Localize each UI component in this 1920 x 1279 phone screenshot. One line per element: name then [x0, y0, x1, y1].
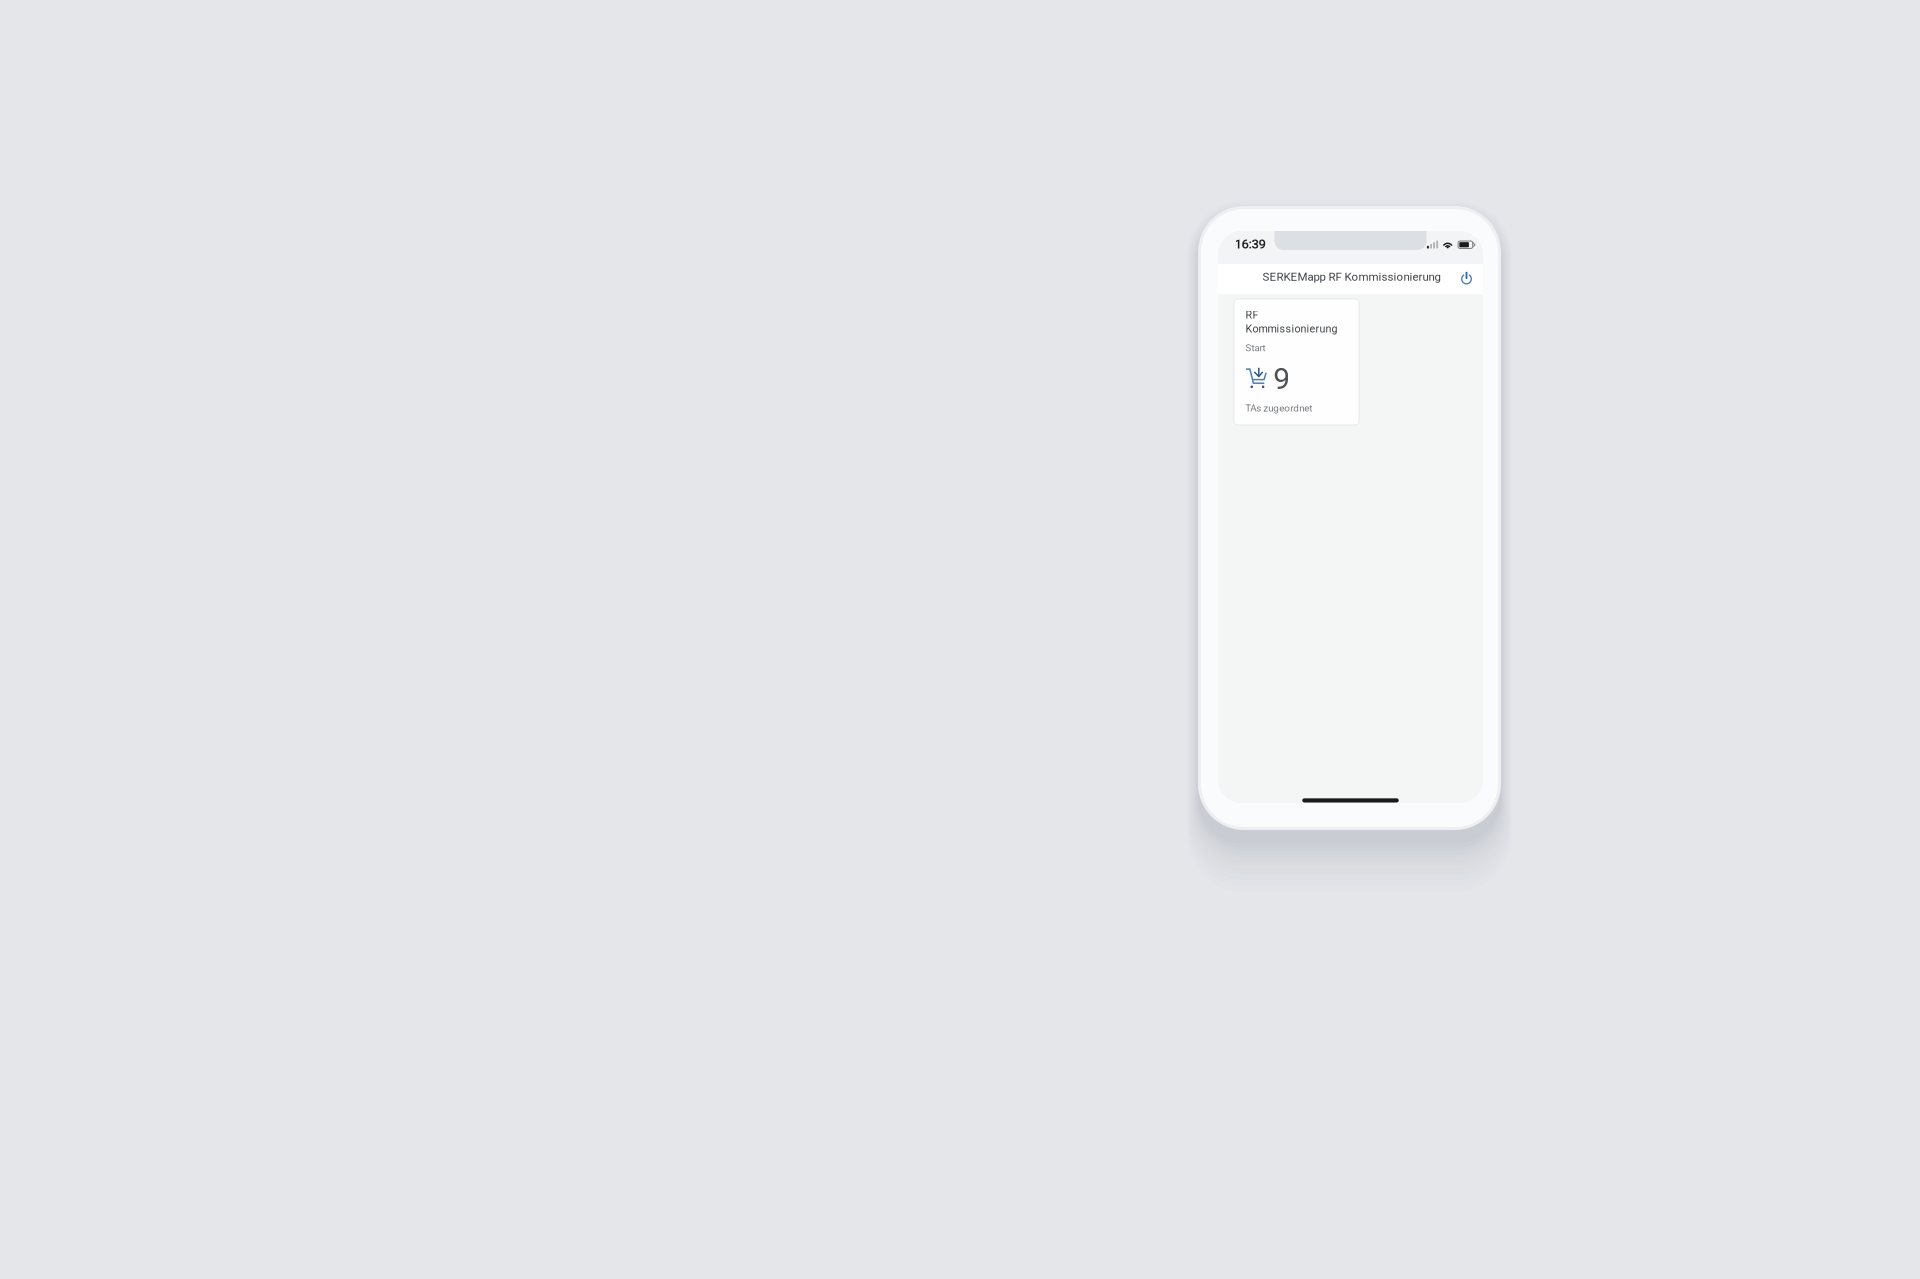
staticText: Kommissionierung [1245, 323, 1337, 335]
staticText: 16:39 [1234, 236, 1265, 252]
staticText: RF [1245, 309, 1258, 321]
staticText: TAs zugeordnet [1245, 402, 1312, 414]
staticText: 9 [1273, 361, 1290, 396]
staticText: SERKEMapp RF Kommissionierung [1262, 270, 1440, 283]
staticText: Start [1245, 342, 1265, 354]
button[interactable]: Abmelden [1454, 266, 1478, 290]
button[interactable]: RF [1234, 299, 1359, 425]
